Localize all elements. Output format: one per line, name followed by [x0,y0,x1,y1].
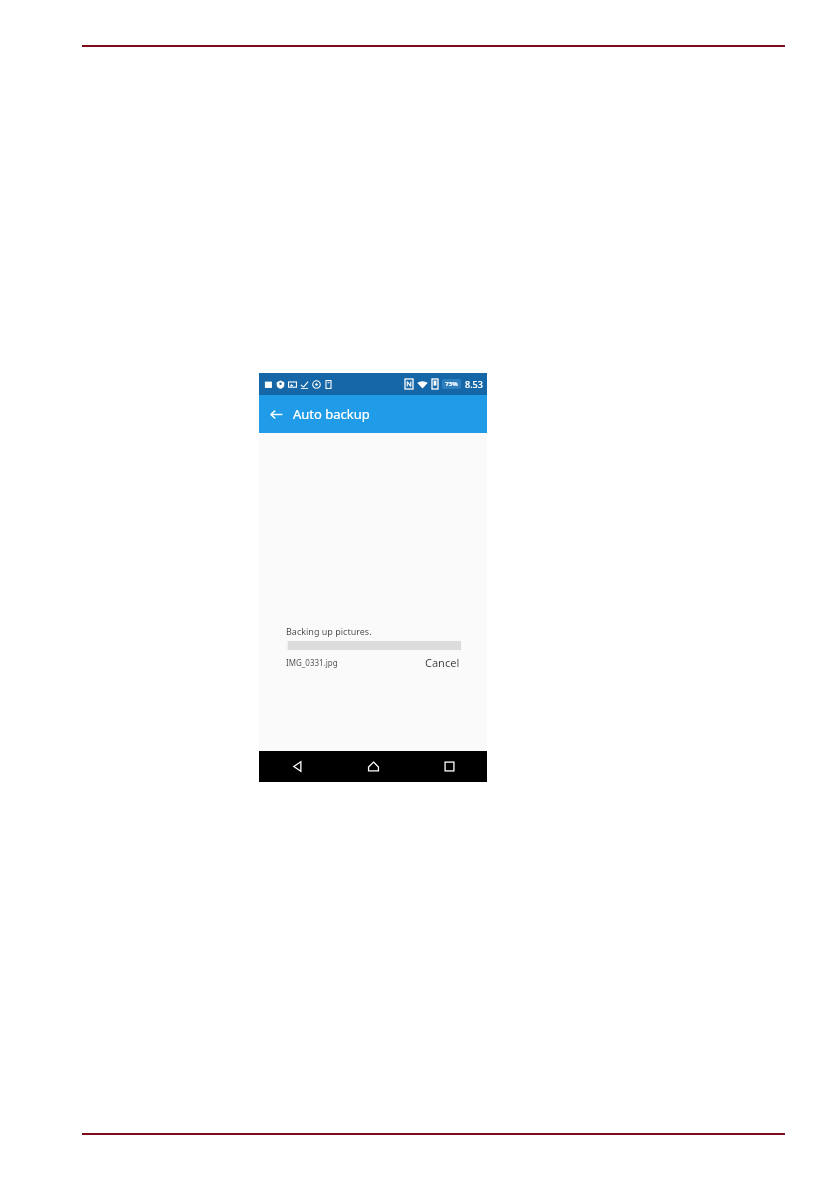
staticText: 8.53 [465,378,483,390]
button[interactable]: Home [335,751,411,782]
staticText: Backing up pictures. [286,625,372,637]
staticText: IMG_0331.jpg [286,657,338,668]
staticText: Auto backup [293,405,370,423]
staticText: 73% [445,380,458,388]
staticText: Cancel [425,655,460,670]
button[interactable]: Cancel [424,654,461,671]
button[interactable]: Recent apps [411,751,487,782]
button[interactable]: Back [259,751,335,782]
button[interactable]: Back [265,403,287,425]
